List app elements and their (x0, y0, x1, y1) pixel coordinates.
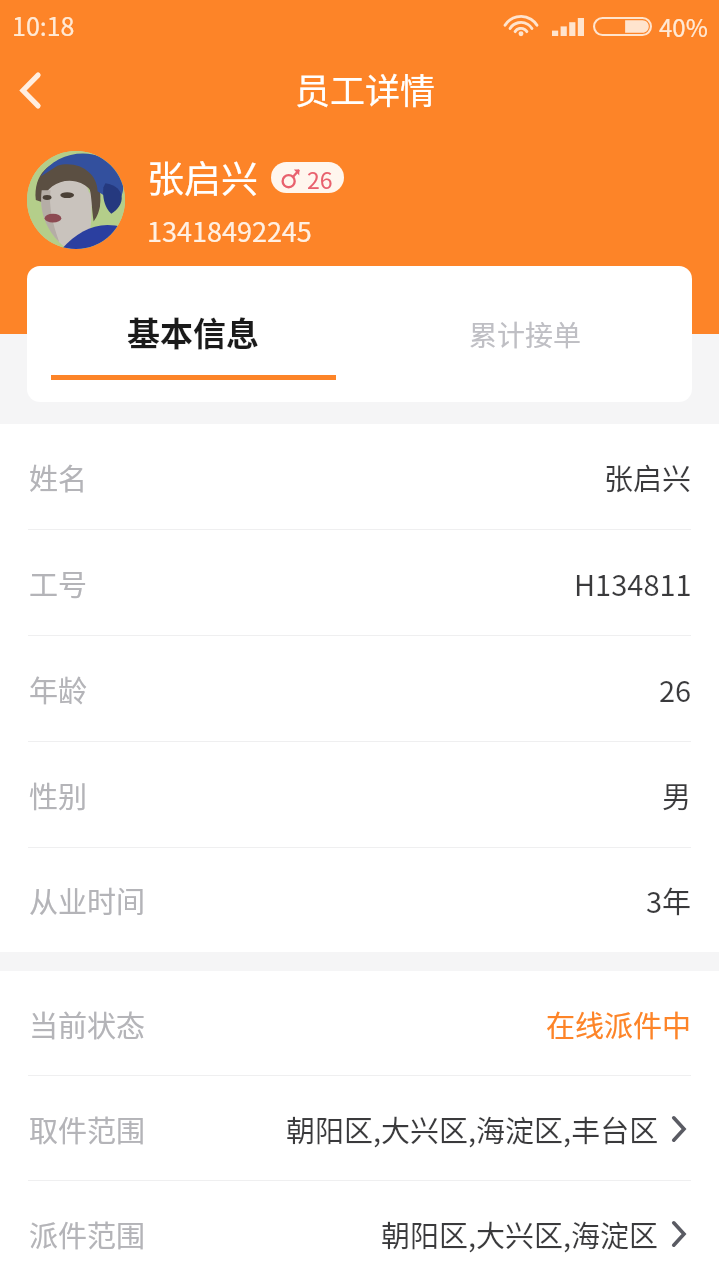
staticText: 男 (662, 774, 692, 816)
staticText: 朝阳区,大兴区,海淀区,丰台区 (286, 1108, 659, 1150)
staticText: 从业时间 (29, 879, 146, 921)
staticText: 26 (307, 162, 333, 193)
staticText: 张启兴 (147, 150, 258, 204)
button[interactable]: 工号 (0, 530, 719, 636)
staticText: H134811 (574, 562, 692, 604)
button[interactable]: 性别 (0, 742, 719, 848)
staticText: 张启兴 (604, 456, 692, 498)
staticText: 性别 (29, 774, 88, 816)
staticText: 取件范围 (29, 1108, 146, 1150)
button[interactable]: 累计接单 (359, 266, 692, 402)
button[interactable]: 基本信息 (27, 266, 359, 402)
staticText: 40% (659, 9, 708, 44)
button[interactable]: 姓名 (0, 424, 719, 530)
button[interactable]: 取件范围 (0, 1076, 719, 1181)
staticText: 基本信息 (127, 308, 259, 356)
staticText: 派件范围 (29, 1213, 146, 1255)
staticText: 员工详情 (295, 63, 436, 114)
staticText: 3年 (646, 879, 692, 921)
button[interactable]: 派件范围 (0, 1181, 719, 1279)
staticText: 工号 (29, 562, 88, 604)
staticText: 13418492245 (147, 211, 312, 250)
button[interactable]: 从业时间 (0, 848, 719, 952)
staticText: 年龄 (29, 668, 88, 710)
staticText: 朝阳区,大兴区,海淀区 (381, 1213, 659, 1255)
button[interactable]: Back (2, 62, 58, 118)
staticText: 姓名 (29, 456, 88, 498)
staticText: 累计接单 (469, 314, 582, 355)
staticText: 26 (659, 668, 692, 710)
staticText: 10:18 (12, 7, 75, 43)
button[interactable]: 当前状态 (0, 971, 719, 1076)
staticText: 当前状态 (29, 1003, 146, 1045)
staticText: 在线派件中 (546, 1003, 692, 1045)
button[interactable]: 年龄 (0, 636, 719, 742)
